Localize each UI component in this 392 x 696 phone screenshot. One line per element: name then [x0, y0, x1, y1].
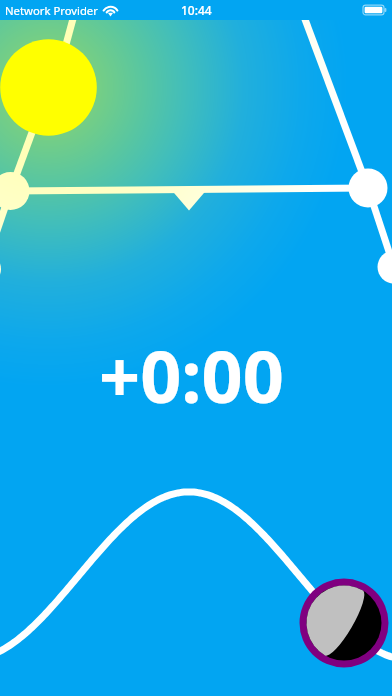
staticText: 10:44	[181, 2, 212, 18]
staticText: +0:00	[99, 326, 284, 424]
staticText: Network Provider	[5, 3, 98, 18]
